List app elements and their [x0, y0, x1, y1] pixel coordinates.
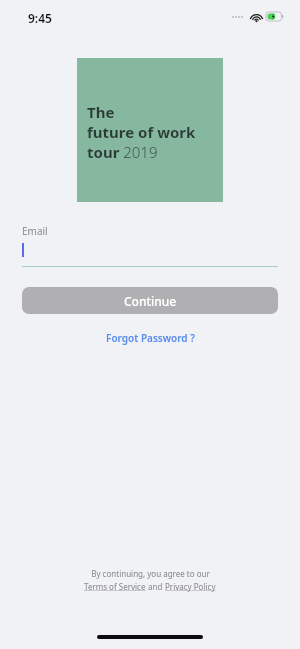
staticText: tour 2019	[87, 142, 158, 162]
staticText: future of work	[87, 122, 196, 142]
staticText: Email	[22, 224, 48, 238]
button[interactable]: Privacy Policy	[165, 581, 216, 592]
button[interactable]: Continue	[22, 287, 278, 314]
other: Battery charging	[266, 12, 284, 21]
staticText: Privacy Policy	[165, 581, 216, 592]
staticText: Terms of Service	[84, 581, 146, 592]
other: Wi-Fi	[250, 12, 263, 22]
staticText: and	[146, 581, 165, 592]
staticText: Forgot Password ?	[106, 331, 195, 345]
staticText: The	[87, 102, 115, 122]
staticText: 9:45	[28, 10, 52, 26]
button[interactable]: Terms of Service	[84, 581, 146, 592]
button[interactable]: Forgot Password ?	[100, 329, 201, 347]
staticText: Continue	[124, 293, 177, 309]
button[interactable]: Email	[22, 224, 278, 269]
staticText: By continuing, you agree to our	[91, 568, 210, 579]
